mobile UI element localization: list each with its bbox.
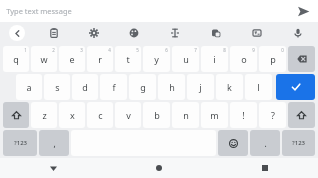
staticText: 9 xyxy=(252,47,255,53)
staticText: ?123 xyxy=(292,139,305,147)
staticText: d xyxy=(82,81,88,93)
staticText: u xyxy=(183,53,189,65)
button[interactable]: Enter xyxy=(276,74,315,100)
button[interactable]: c xyxy=(87,102,113,128)
button[interactable]: y xyxy=(143,46,170,72)
button[interactable]: Backspace xyxy=(288,46,315,72)
staticText: k xyxy=(227,81,232,93)
staticText: 8 xyxy=(223,47,226,53)
button[interactable]: x xyxy=(59,102,85,128)
staticText: y xyxy=(154,53,159,65)
button[interactable]: Type text message xyxy=(6,0,292,22)
staticText: a xyxy=(26,81,32,93)
staticText: 7 xyxy=(194,47,197,53)
staticText: x xyxy=(70,109,75,121)
button[interactable]: Home xyxy=(106,158,212,178)
button[interactable]: Translate xyxy=(236,22,277,44)
staticText: h xyxy=(169,81,175,93)
button[interactable]: a xyxy=(16,74,42,100)
button[interactable]: z xyxy=(31,102,57,128)
staticText: q xyxy=(13,53,19,65)
button[interactable]: w xyxy=(31,46,57,72)
staticText: e xyxy=(69,53,75,65)
button[interactable]: Recent apps xyxy=(212,158,318,178)
button[interactable]: Themes xyxy=(114,22,154,44)
button[interactable]: Stickers xyxy=(195,22,236,44)
button[interactable]: Close keyboard xyxy=(0,158,106,178)
staticText: , xyxy=(53,138,56,149)
staticText: t xyxy=(126,53,130,65)
button[interactable]: Symbols xyxy=(282,130,315,156)
button[interactable]: Emoji xyxy=(218,130,248,156)
button[interactable]: n xyxy=(172,102,199,128)
staticText: n xyxy=(183,109,189,121)
staticText: g xyxy=(140,81,146,93)
button[interactable]: o xyxy=(230,46,257,72)
button[interactable]: i xyxy=(201,46,228,72)
button[interactable]: Shift xyxy=(288,102,315,128)
staticText: l xyxy=(257,81,260,93)
staticText: . xyxy=(264,138,267,149)
button[interactable]: b xyxy=(143,102,170,128)
button[interactable]: l xyxy=(245,74,272,100)
button[interactable]: m xyxy=(201,102,228,128)
staticText: 2 xyxy=(52,47,55,53)
staticText: r xyxy=(98,53,102,65)
staticText: 6 xyxy=(165,47,168,53)
button[interactable]: s xyxy=(44,74,70,100)
staticText: 4 xyxy=(108,47,111,53)
button[interactable]: Clipboard xyxy=(34,22,74,44)
staticText: ? xyxy=(271,109,275,121)
button[interactable]: Period xyxy=(250,130,280,156)
staticText: v xyxy=(126,109,131,121)
button[interactable]: ! xyxy=(230,102,257,128)
staticText: b xyxy=(154,109,160,121)
button[interactable]: Shift xyxy=(3,102,29,128)
button[interactable]: ? xyxy=(259,102,286,128)
button[interactable]: Voice input xyxy=(277,22,318,44)
button[interactable]: u xyxy=(172,46,199,72)
staticText: j xyxy=(199,81,202,93)
staticText: 3 xyxy=(80,47,83,53)
button[interactable]: t xyxy=(115,46,141,72)
staticText: Type text message xyxy=(6,6,72,16)
staticText: ! xyxy=(242,109,245,121)
staticText: o xyxy=(241,53,247,65)
button[interactable]: k xyxy=(216,74,243,100)
staticText: 1 xyxy=(24,47,27,53)
staticText: 0 xyxy=(281,47,284,53)
button[interactable]: Expand toolbar xyxy=(0,22,34,44)
staticText: 5 xyxy=(136,47,139,53)
button[interactable]: p xyxy=(259,46,286,72)
staticText: z xyxy=(42,109,47,121)
button[interactable]: j xyxy=(187,74,214,100)
button[interactable]: Symbols xyxy=(3,130,37,156)
staticText: f xyxy=(112,81,116,93)
button[interactable]: h xyxy=(158,74,185,100)
button[interactable]: Settings xyxy=(74,22,114,44)
button[interactable]: r xyxy=(87,46,113,72)
staticText: p xyxy=(270,53,276,65)
button[interactable]: v xyxy=(115,102,141,128)
button[interactable]: f xyxy=(100,74,127,100)
staticText: w xyxy=(40,53,48,65)
button[interactable]: Text editing xyxy=(154,22,195,44)
button[interactable]: e xyxy=(59,46,85,72)
staticText: i xyxy=(213,53,216,65)
staticText: m xyxy=(210,109,219,121)
staticText: c xyxy=(98,109,103,121)
button[interactable]: d xyxy=(72,74,98,100)
button[interactable]: g xyxy=(129,74,156,100)
staticText: s xyxy=(55,81,60,93)
button[interactable]: Send xyxy=(292,0,314,22)
button[interactable]: q xyxy=(3,46,29,72)
button[interactable]: Comma xyxy=(39,130,69,156)
staticText: ?123 xyxy=(14,139,27,147)
